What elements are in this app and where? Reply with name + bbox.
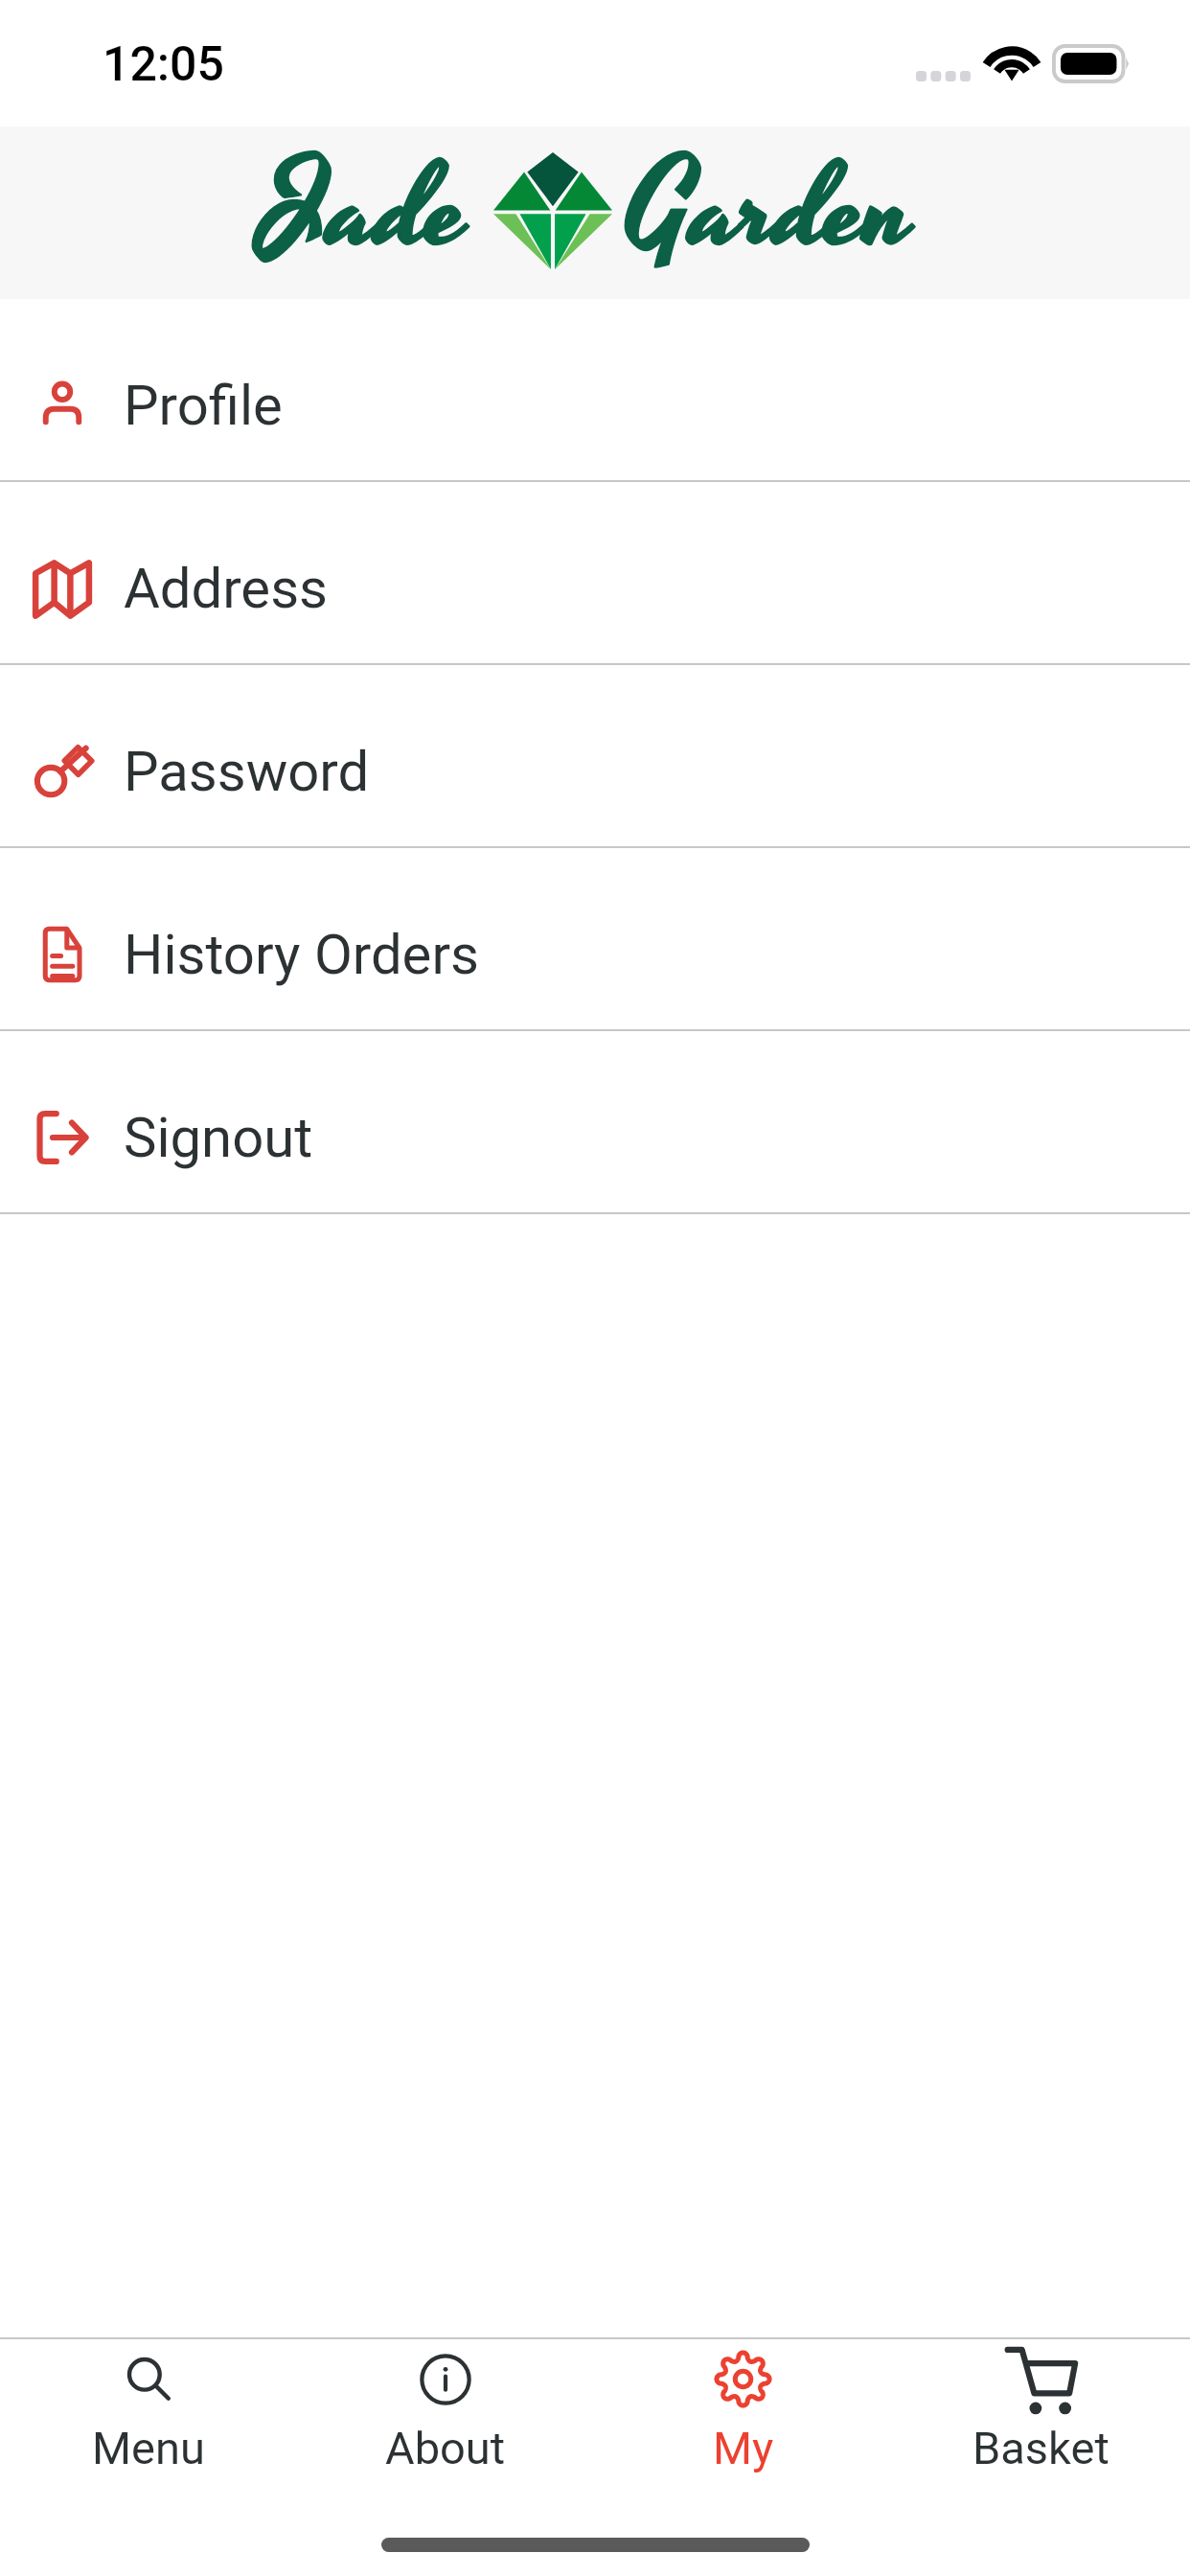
staticText: Password — [124, 739, 370, 804]
button[interactable]: About — [297, 2339, 594, 2500]
staticText: Jade — [263, 126, 469, 298]
button[interactable]: Password — [0, 665, 1190, 846]
button[interactable]: Menu — [0, 2339, 297, 2500]
staticText: Address — [124, 556, 328, 621]
staticText: Garden — [627, 126, 915, 298]
button[interactable]: Basket — [892, 2339, 1190, 2500]
staticText: 12:05 — [103, 36, 224, 93]
button[interactable]: Address — [0, 482, 1190, 663]
button[interactable]: Signout — [0, 1031, 1190, 1212]
staticText: Profile — [124, 373, 283, 438]
button[interactable]: Profile — [0, 299, 1190, 480]
staticText: About — [385, 2422, 506, 2474]
button[interactable]: My — [594, 2339, 892, 2500]
staticText: Basket — [973, 2422, 1110, 2474]
staticText: Menu — [92, 2422, 205, 2474]
staticText: History Orders — [124, 922, 479, 987]
staticText: My — [713, 2422, 774, 2474]
staticText: Jade — [263, 126, 469, 298]
button[interactable]: History Orders — [0, 848, 1190, 1029]
staticText: Garden — [627, 126, 915, 298]
staticText: Signout — [124, 1105, 313, 1170]
